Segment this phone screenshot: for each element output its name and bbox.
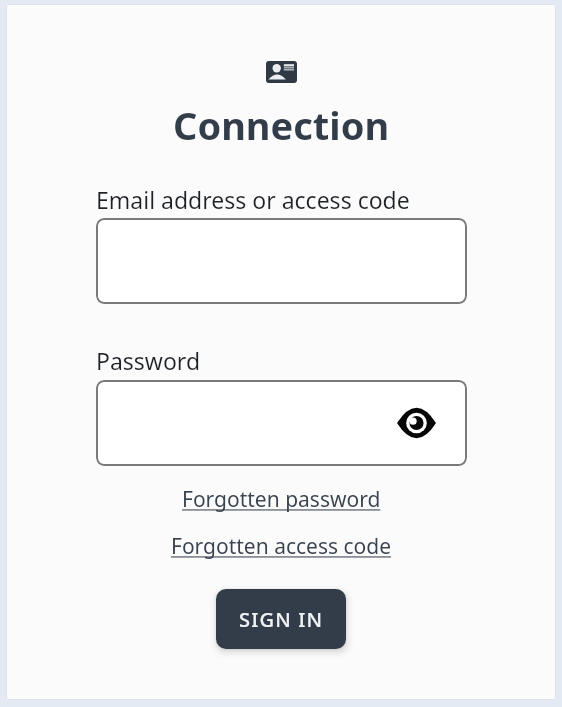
staticText: Password [96,345,201,376]
button[interactable]: Forgotten password [182,485,381,514]
staticText: Email address or access code [96,184,410,215]
button[interactable] [96,218,467,304]
staticText: Forgotten access code [171,532,392,561]
staticText: SIGN IN [239,606,324,633]
staticText: Forgotten password [182,485,381,514]
button[interactable] [96,380,467,466]
button[interactable]: SIGN IN [216,589,346,649]
staticText: Connection [173,99,390,151]
button[interactable]: Forgotten access code [171,532,392,561]
